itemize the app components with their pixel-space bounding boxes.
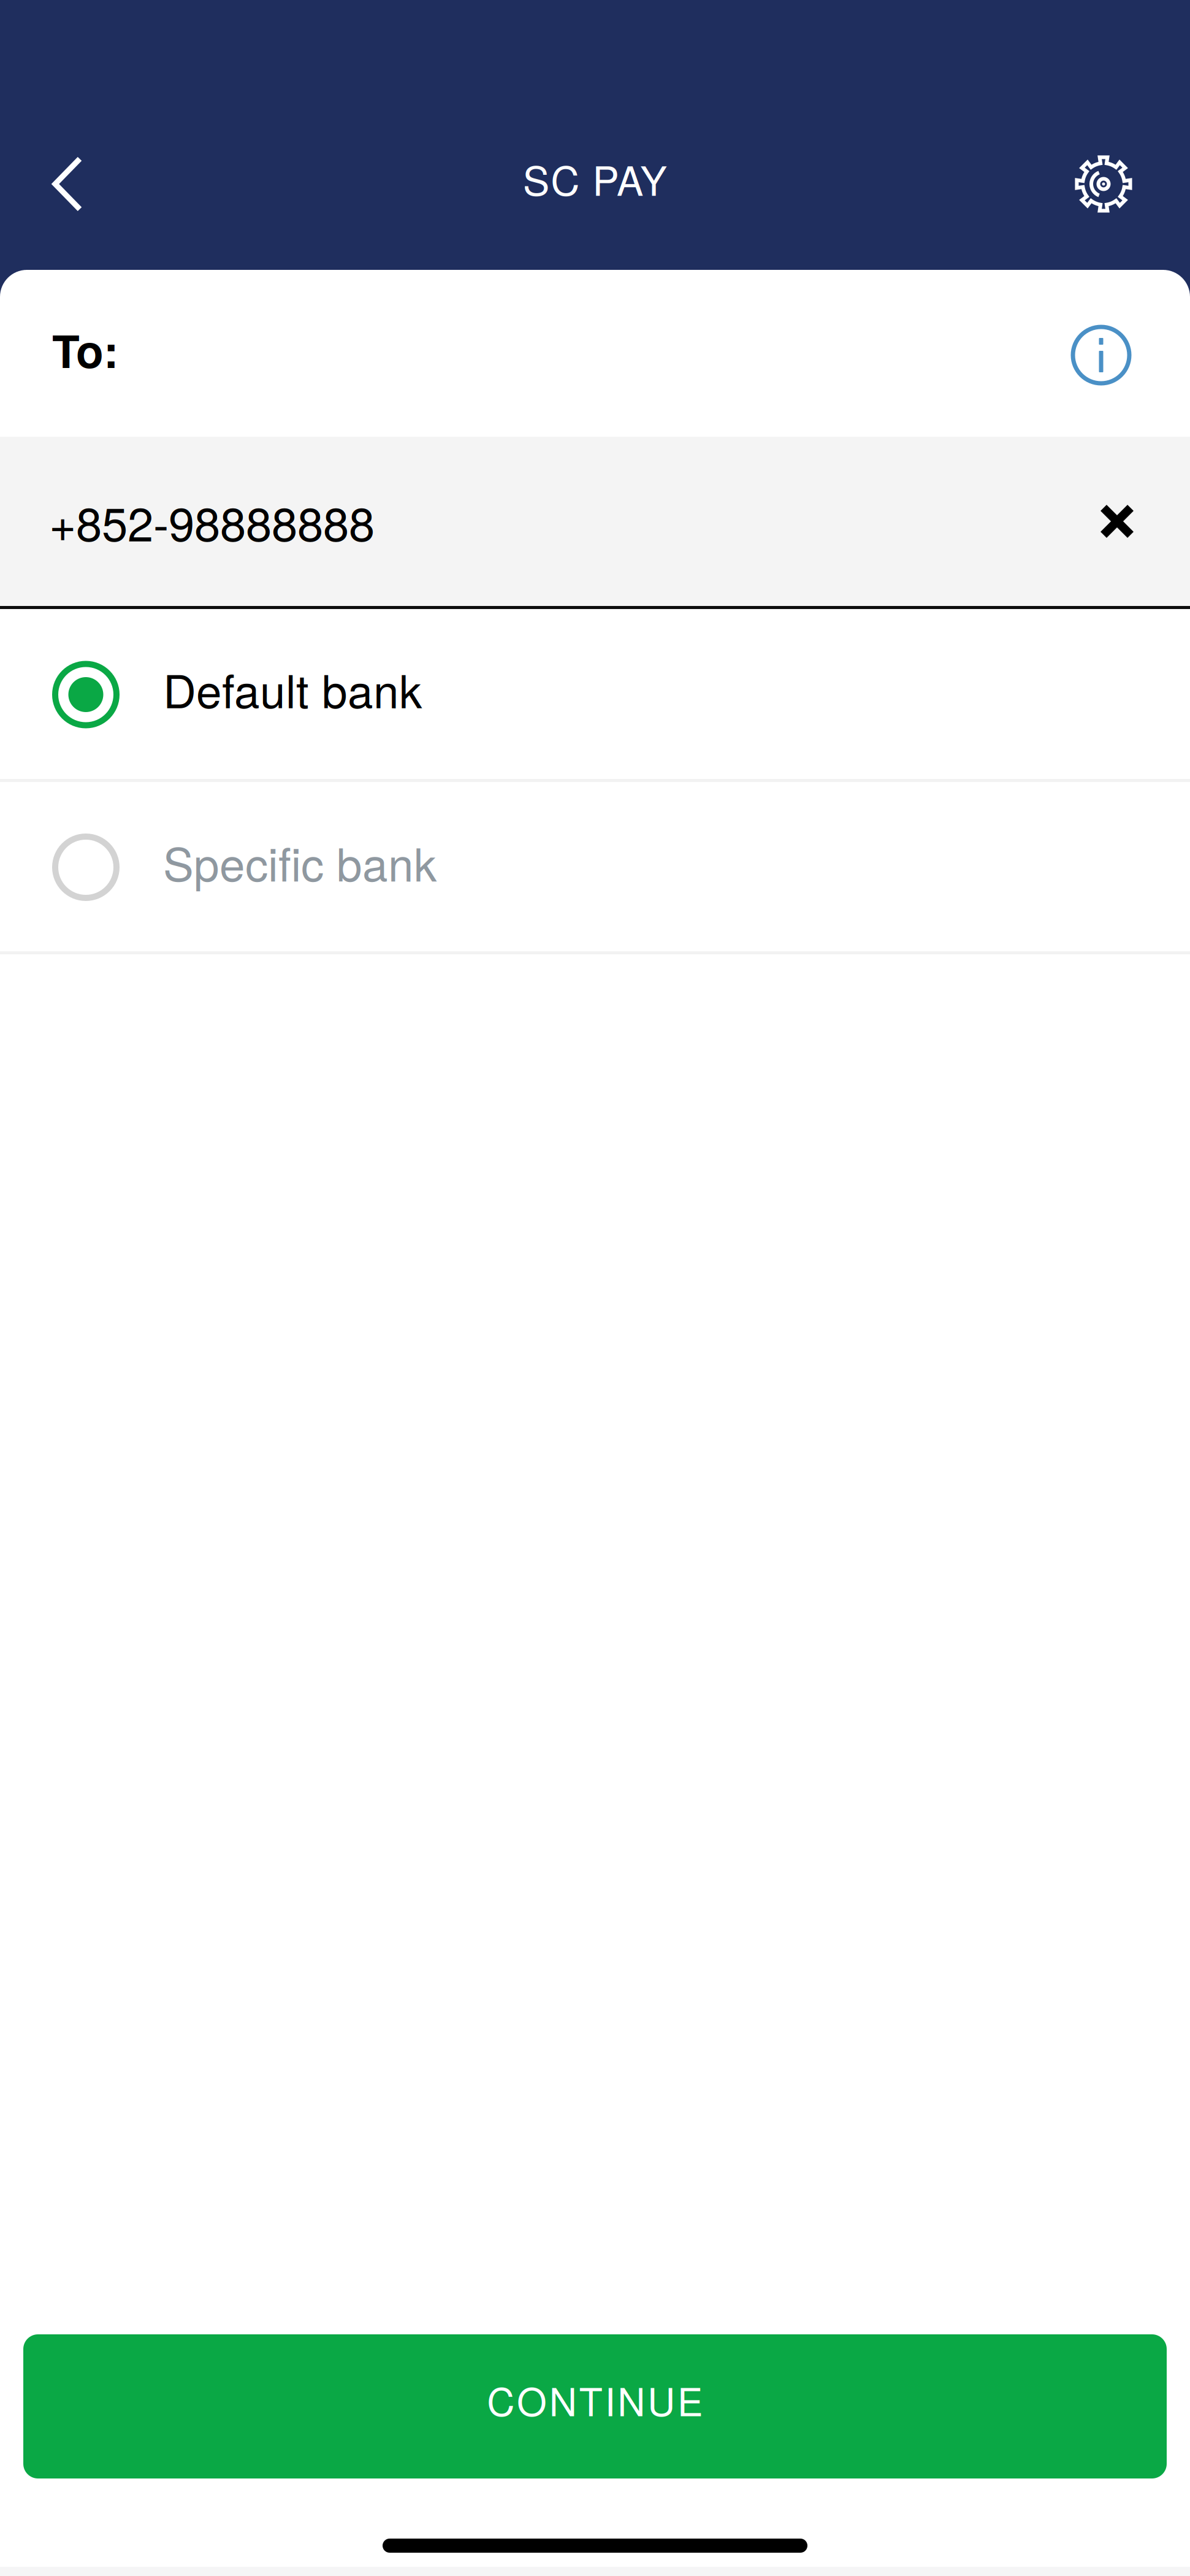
button[interactable]: Default bank xyxy=(0,609,1190,779)
button[interactable]: Back xyxy=(20,138,112,230)
staticText: +852-98888888 xyxy=(49,488,375,555)
button[interactable]: Specific bank xyxy=(0,782,1190,951)
button[interactable]: Clear xyxy=(1083,488,1151,555)
staticText: Default bank xyxy=(163,656,422,721)
button[interactable]: Information xyxy=(1061,313,1140,393)
staticText: Specific bank xyxy=(163,829,437,894)
staticText: SC PAY xyxy=(523,150,667,207)
staticText: CONTINUE xyxy=(487,2372,703,2427)
button[interactable]: Settings xyxy=(1058,138,1150,230)
button[interactable]: CONTINUE xyxy=(23,2334,1167,2478)
staticText: To: xyxy=(52,317,118,382)
